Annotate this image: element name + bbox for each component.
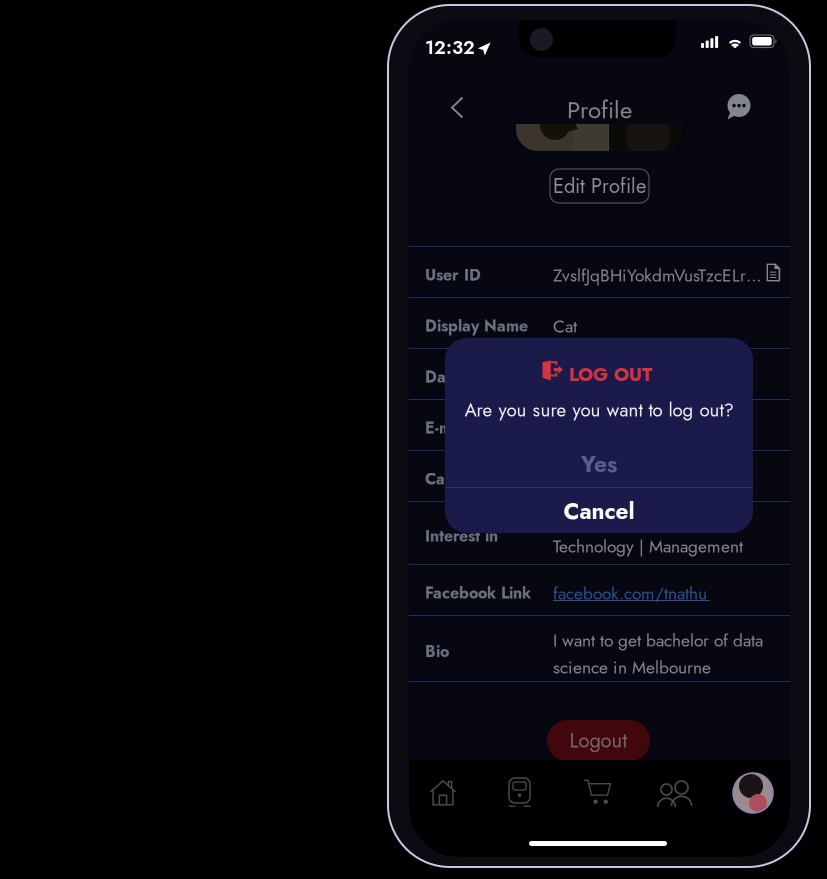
button[interactable]: Back [435,72,479,124]
staticText: E-mail [425,416,469,440]
staticText: Facebook Link [425,581,531,605]
staticText: 12:32 [425,34,475,61]
button[interactable]: Yes [445,445,753,483]
button[interactable]: Messages [717,72,761,124]
staticText: Date of Birth [425,365,521,389]
staticText: Yes [581,448,617,480]
staticText: cat@gmail.com [553,416,663,441]
staticText: User ID [425,263,481,287]
button[interactable]: Cart [584,779,612,807]
staticText: LOG OUT [569,361,652,388]
button[interactable]: Edit Profile [550,169,649,203]
staticText: Career [425,467,476,491]
staticText: Cat [553,314,577,339]
staticText: Student [553,467,607,492]
button[interactable]: Cancel [445,489,753,533]
staticText: 28/01/2000 [553,365,648,390]
staticText: ZvslfJqBHiYokdmVusTzcELr… [553,263,762,288]
staticText: Edit Profile [553,171,646,200]
button[interactable]: User ID [409,247,790,298]
button[interactable]: Profile [733,773,773,813]
staticText: Bio [425,640,449,663]
button[interactable]: Logout [547,720,650,761]
staticText: Cancel [563,495,634,527]
staticText: Display Name [425,314,528,338]
staticText: science in Melbourne [553,655,711,680]
button[interactable]: Facebook Link [409,565,790,616]
button[interactable]: Friends [659,780,691,807]
staticText: Technology | Management [553,534,743,559]
staticText: Are you sure you want to log out? [464,396,733,423]
button[interactable]: Tickets [507,778,532,808]
staticText: Interest in [425,524,498,548]
button[interactable]: Home [427,779,459,807]
staticText: I want to get bachelor of data [553,628,763,653]
staticText: Logout [569,726,627,755]
staticText: Profile [567,93,632,127]
staticText: facebook.com/tnathu [553,581,707,606]
